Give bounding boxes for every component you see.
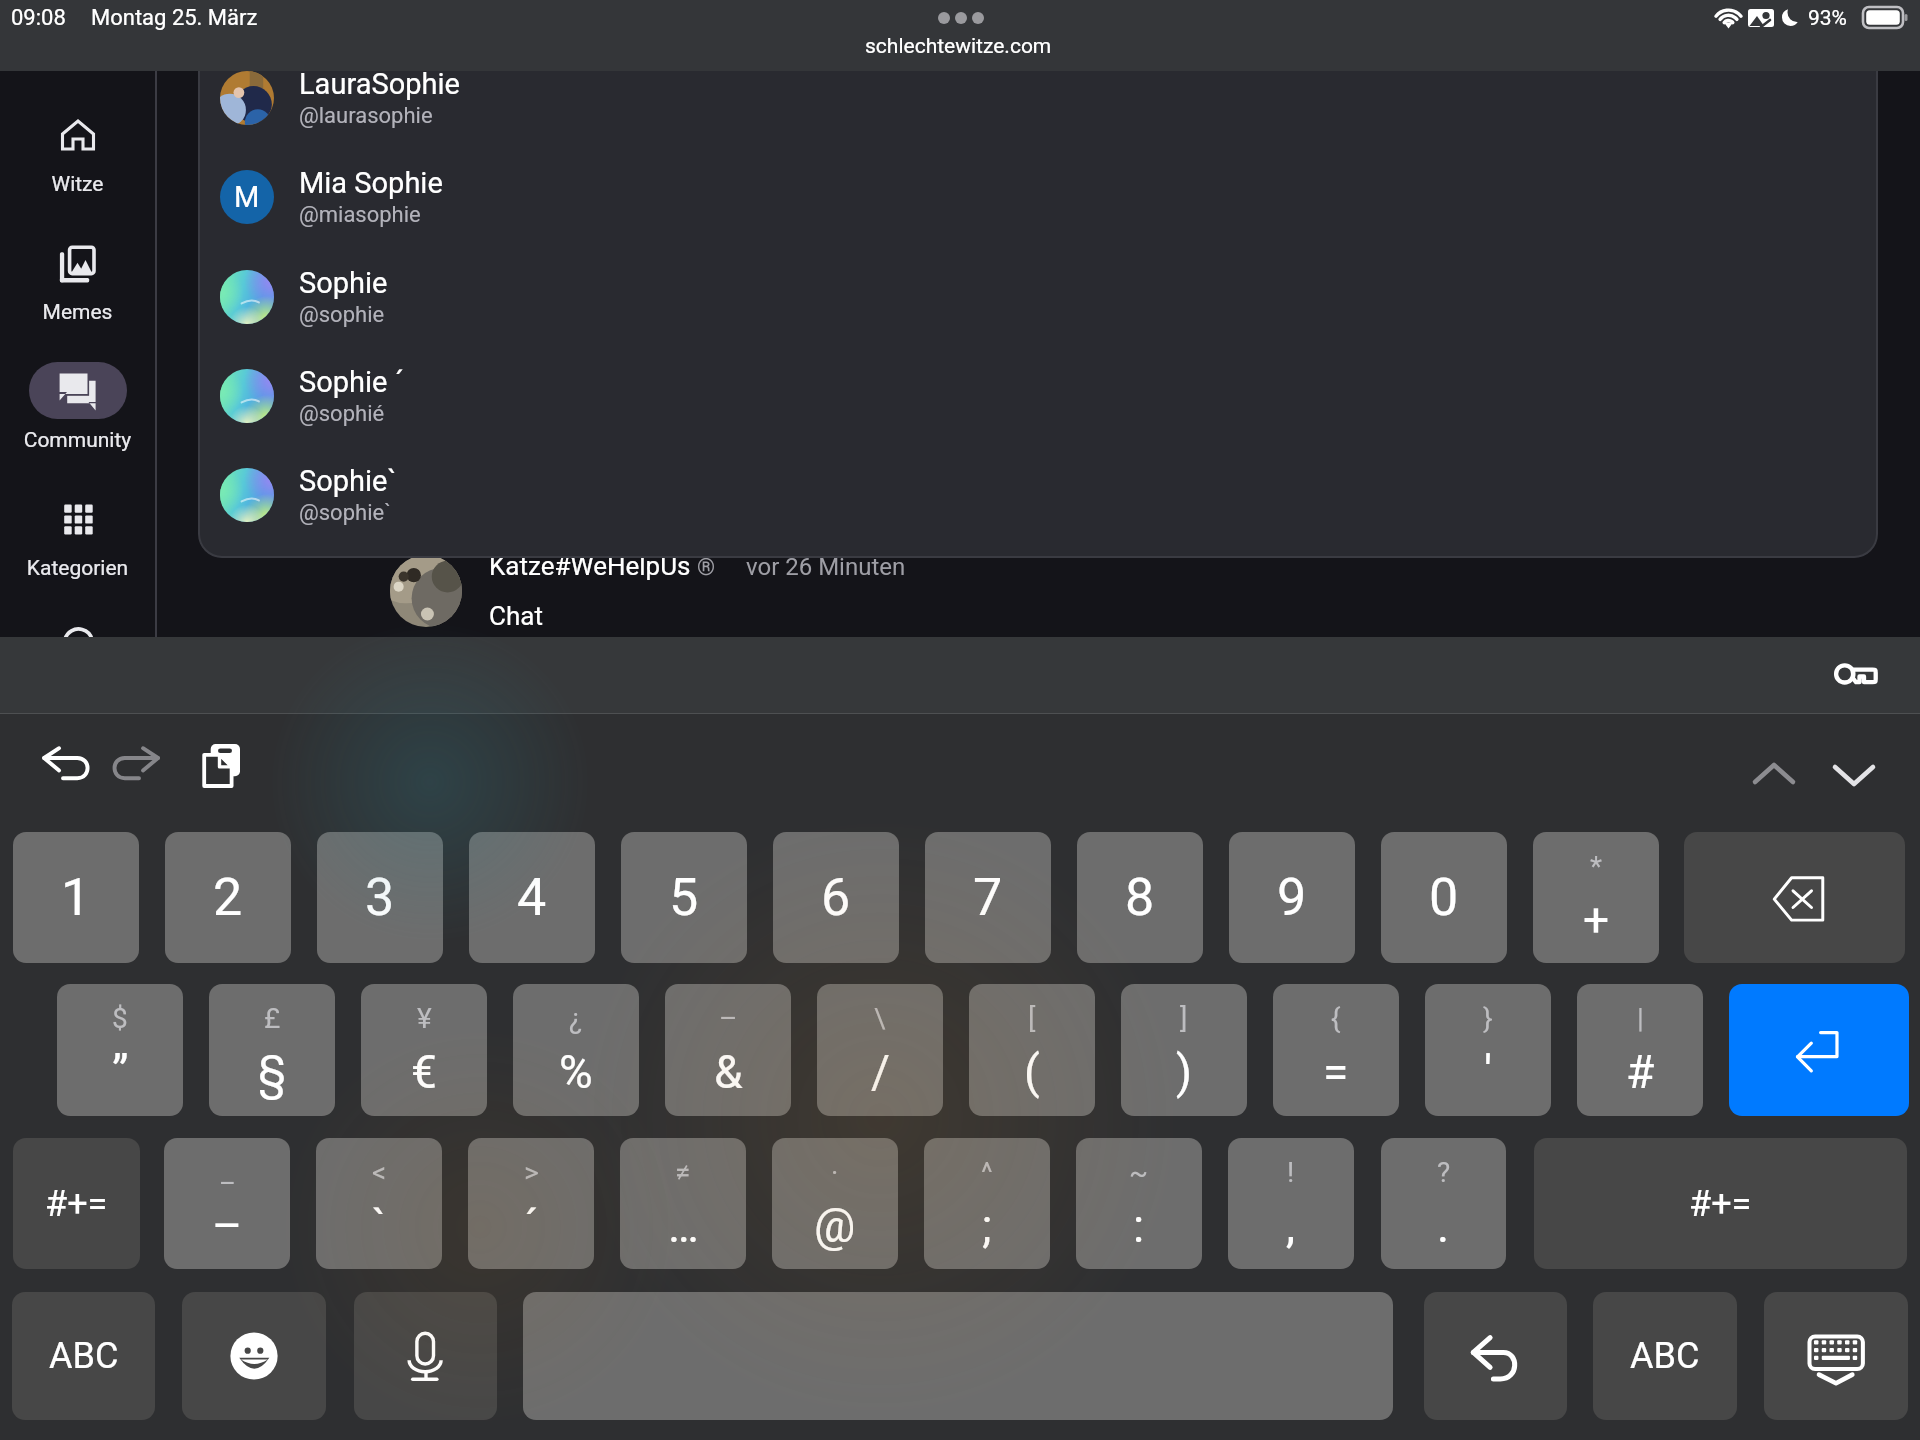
staticText: M	[234, 180, 260, 214]
staticText: 4	[517, 867, 547, 928]
staticText: ?	[1437, 1156, 1451, 1189]
button[interactable]: Passwörter	[1828, 655, 1882, 693]
button[interactable]: ¿	[513, 984, 639, 1116]
button[interactable]: #+=	[1534, 1138, 1907, 1269]
button[interactable]: }	[1425, 984, 1551, 1116]
staticText: –	[212, 1199, 243, 1253]
button[interactable]: –	[665, 984, 791, 1116]
button[interactable]: Kategorien	[0, 485, 155, 589]
button[interactable]: <	[316, 1138, 442, 1269]
button[interactable]: 2	[165, 832, 291, 963]
staticText: Chat	[489, 601, 543, 631]
button[interactable]: Witze	[0, 101, 155, 205]
staticText: Montag 25. März	[91, 5, 258, 31]
button[interactable]: ^	[924, 1138, 1050, 1269]
staticText: ·	[831, 1156, 839, 1189]
button[interactable]: 3	[317, 832, 443, 963]
button[interactable]: ?	[1381, 1138, 1506, 1269]
button[interactable]: Sophie`	[198, 446, 1878, 544]
button[interactable]: ]	[1121, 984, 1247, 1116]
staticText: ¿	[569, 1002, 583, 1035]
button[interactable]: Nach oben	[1748, 754, 1808, 814]
button[interactable]: ~	[1076, 1138, 1202, 1269]
button[interactable]: [	[969, 984, 1095, 1116]
staticText: Community	[0, 428, 155, 453]
button[interactable]: ·	[772, 1138, 898, 1269]
button[interactable]: ≠	[620, 1138, 746, 1269]
button[interactable]: \	[817, 984, 943, 1116]
staticText: LauraSophie	[299, 67, 460, 101]
staticText: Sophie`	[299, 464, 397, 498]
staticText: ^	[981, 1156, 993, 1189]
staticText: 2	[213, 867, 243, 928]
button[interactable]: 8	[1077, 832, 1203, 963]
button[interactable]: Eingabe	[1729, 984, 1909, 1116]
button[interactable]: Memes	[0, 229, 155, 333]
button[interactable]: Sophie	[198, 248, 1878, 346]
staticText: @	[814, 1199, 856, 1253]
button[interactable]: Löschen	[1684, 832, 1905, 963]
button[interactable]: M	[198, 148, 1878, 246]
button[interactable]: Mehr	[938, 8, 984, 28]
staticText: $	[112, 1002, 128, 1035]
staticText: :	[1133, 1199, 1145, 1253]
button[interactable]: 9	[1229, 832, 1355, 963]
button[interactable]: Sophie ´	[198, 347, 1878, 445]
staticText: Sophie ´	[299, 365, 404, 399]
button[interactable]: Spracheingabe	[354, 1292, 497, 1420]
staticText: ≠	[675, 1156, 691, 1189]
staticText: ABC	[1630, 1335, 1700, 1377]
button[interactable]: 4	[469, 832, 595, 963]
staticText: }	[1483, 1002, 1493, 1035]
button[interactable]: ABC	[1593, 1292, 1737, 1420]
button[interactable]: *	[1533, 832, 1659, 963]
staticText: ABC	[49, 1335, 119, 1377]
button[interactable]: Wiederholen	[114, 744, 174, 804]
button[interactable]: Tastatur ausblenden	[1764, 1292, 1908, 1420]
staticText: Memes	[0, 300, 155, 325]
button[interactable]: 0	[1381, 832, 1507, 963]
staticText: 3	[365, 867, 395, 928]
button[interactable]: schlechtewitze.com	[860, 30, 1060, 64]
button[interactable]: Profil	[63, 629, 94, 638]
staticText: =	[1323, 1045, 1349, 1099]
staticText: ®	[697, 554, 716, 581]
button[interactable]: |	[1577, 984, 1703, 1116]
button[interactable]: #+=	[13, 1138, 140, 1269]
staticText: vor 26 Minuten	[746, 553, 906, 581]
button[interactable]: Emoji	[182, 1292, 326, 1420]
button[interactable]: LauraSophie	[198, 49, 1878, 147]
staticText: 9	[1277, 867, 1307, 928]
button[interactable]: >	[468, 1138, 594, 1269]
staticText: Katze#WeHelpUs	[489, 551, 691, 581]
staticText: +	[1583, 893, 1610, 947]
button[interactable]: £	[209, 984, 335, 1116]
button[interactable]: 6	[773, 832, 899, 963]
button[interactable]: $	[57, 984, 183, 1116]
staticText: |	[1637, 1002, 1644, 1035]
staticText: *	[1590, 850, 1603, 883]
button[interactable]: Einfügen	[192, 744, 252, 804]
button[interactable]: 1	[13, 832, 139, 963]
button[interactable]: _	[164, 1138, 290, 1269]
staticText: _	[221, 1156, 234, 1189]
staticText: .	[1437, 1199, 1450, 1253]
button[interactable]: Community	[0, 357, 155, 461]
staticText: %	[559, 1045, 593, 1099]
button[interactable]: ¥	[361, 984, 487, 1116]
button[interactable]: Nach unten	[1828, 754, 1888, 814]
button[interactable]: {	[1273, 984, 1399, 1116]
staticText: !	[1287, 1156, 1295, 1189]
staticText: @sophie`	[299, 500, 391, 526]
staticText: <	[372, 1156, 387, 1189]
button[interactable]: Rückgängig	[1424, 1292, 1567, 1420]
button[interactable]: !	[1228, 1138, 1354, 1269]
staticText: 8	[1125, 867, 1155, 928]
staticText: 7	[973, 867, 1003, 928]
button[interactable]: ABC	[12, 1292, 155, 1420]
staticText: `	[372, 1199, 387, 1253]
button[interactable]: 7	[925, 832, 1051, 963]
button[interactable]: 5	[621, 832, 747, 963]
button[interactable]: Rückgängig	[34, 744, 94, 804]
